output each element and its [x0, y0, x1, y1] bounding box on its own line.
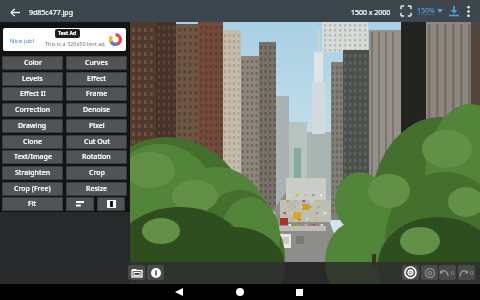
- button[interactable]: Correction: [2, 103, 63, 117]
- staticText: Pixel: [89, 121, 105, 131]
- button[interactable]: [147, 265, 164, 280]
- button[interactable]: [97, 197, 125, 211]
- staticText: Drawing: [18, 121, 47, 131]
- button[interactable]: Clone: [2, 135, 63, 149]
- button[interactable]: [291, 284, 307, 300]
- staticText: This is a 320x50 test ad.: [45, 40, 107, 47]
- button[interactable]: 150%: [417, 4, 443, 18]
- button[interactable]: [6, 4, 24, 20]
- staticText: Rotation: [82, 152, 111, 162]
- staticText: Cut Out: [84, 137, 110, 147]
- staticText: Straighten: [15, 168, 51, 178]
- button[interactable]: [398, 3, 413, 19]
- button[interactable]: Text/Image: [2, 150, 63, 164]
- staticText: Fit: [28, 199, 37, 209]
- staticText: 0: [451, 269, 455, 277]
- button[interactable]: [421, 265, 438, 280]
- staticText: Crop: [89, 168, 105, 178]
- staticText: 0: [470, 269, 474, 277]
- staticText: Effect II: [20, 89, 46, 99]
- staticText: 1500 x 2000: [351, 8, 391, 18]
- staticText: Color: [24, 58, 42, 68]
- staticText: Frame: [86, 89, 108, 99]
- staticText: Test Ad: [58, 30, 77, 37]
- button[interactable]: Frame: [66, 87, 127, 101]
- button[interactable]: Effect: [66, 72, 127, 86]
- button[interactable]: Effect II: [2, 87, 63, 101]
- staticText: Levels: [22, 74, 43, 84]
- button[interactable]: [402, 265, 419, 280]
- staticText: Denoise: [83, 105, 111, 115]
- staticText: Text/Image: [14, 152, 52, 162]
- staticText: 9d85c477.jpg: [29, 8, 73, 18]
- staticText: Effect: [87, 74, 107, 84]
- staticText: Resize: [86, 184, 108, 194]
- button[interactable]: Color: [2, 56, 63, 70]
- staticText: 150%: [417, 6, 435, 16]
- button[interactable]: [66, 197, 94, 211]
- staticText: Correction: [15, 105, 51, 115]
- staticText: Clone: [23, 137, 43, 147]
- button[interactable]: Nice job!: [3, 28, 126, 51]
- staticText: Nice job!: [10, 37, 35, 45]
- button[interactable]: Cut Out: [66, 135, 127, 149]
- staticText: Curves: [85, 58, 108, 68]
- button[interactable]: [232, 284, 248, 300]
- button[interactable]: Resize: [66, 182, 127, 196]
- button[interactable]: Denoise: [66, 103, 127, 117]
- button[interactable]: 0: [439, 265, 456, 280]
- button[interactable]: Rotation: [66, 150, 127, 164]
- button[interactable]: Fit: [2, 197, 63, 211]
- button[interactable]: Crop: [66, 166, 127, 180]
- button[interactable]: [171, 284, 187, 300]
- button[interactable]: Straighten: [2, 166, 63, 180]
- staticText: Crop (Free): [14, 184, 51, 194]
- button[interactable]: [461, 0, 476, 22]
- button[interactable]: Levels: [2, 72, 63, 86]
- button[interactable]: Pixel: [66, 119, 127, 133]
- button[interactable]: [446, 3, 462, 19]
- button[interactable]: [128, 265, 145, 280]
- button[interactable]: Drawing: [2, 119, 63, 133]
- button[interactable]: Crop (Free): [2, 182, 63, 196]
- button[interactable]: 0: [458, 265, 475, 280]
- button[interactable]: Curves: [66, 56, 127, 70]
